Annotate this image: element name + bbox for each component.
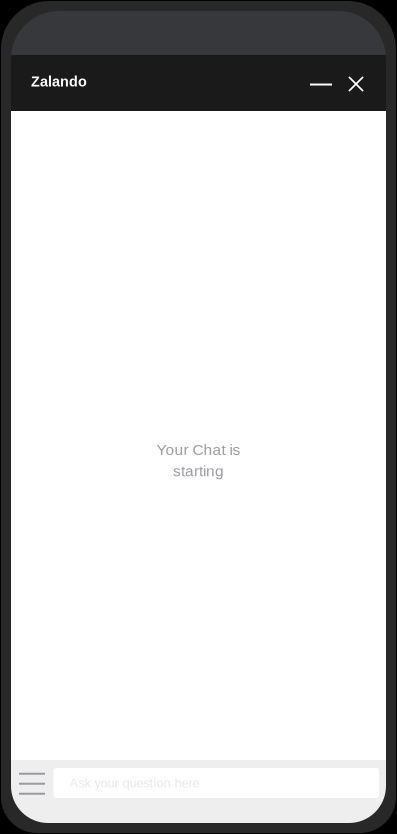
button[interactable]: Menu (18, 768, 45, 798)
staticText: Ask your question here (69, 776, 199, 790)
button[interactable]: Close (334, 60, 378, 106)
staticText: Zalando (31, 73, 87, 90)
staticText: Your Chat is (156, 441, 240, 458)
button[interactable]: Minimise (308, 60, 334, 106)
button[interactable]: Ask your question here (53, 768, 379, 798)
staticText: starting (173, 462, 224, 480)
